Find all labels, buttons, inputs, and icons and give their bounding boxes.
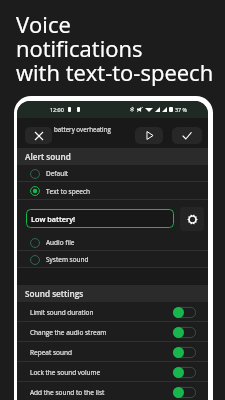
button[interactable]: Play [135,127,163,144]
staticText: Sound settings [25,288,84,299]
staticText: Voice notifications with text-to-speech [16,9,214,88]
staticText: 37 % [175,106,188,113]
staticText: Repeat sound [30,348,173,357]
staticText: Change the audio stream [30,328,173,337]
button[interactable]: Repeat sound [17,342,208,362]
button[interactable]: Audio file [17,234,208,251]
button[interactable]: Save [172,127,202,144]
staticText: Lock the sound volume [30,368,173,377]
button[interactable]: Add the sound to the list [17,382,208,400]
staticText: 12:00 [50,106,64,113]
staticText: Audio file [46,238,75,247]
button[interactable]: Lock the sound volume [17,362,208,382]
button[interactable]: Speech settings [180,207,204,231]
button[interactable]: System sound [17,251,208,268]
button[interactable]: Change the audio stream [17,322,208,342]
staticText: Add the sound to the list [30,388,173,397]
staticText: Low battery! [31,214,76,224]
button[interactable]: Default [17,165,208,182]
button[interactable]: Text to speech [17,182,208,200]
staticText: System sound [46,255,89,264]
button[interactable]: Limit sound duration [17,302,208,322]
staticText: battery overheating [54,125,111,133]
staticText: Text to speech [46,187,91,196]
button[interactable]: Close [25,127,52,144]
staticText: Alert sound [25,151,71,162]
staticText: Limit sound duration [30,308,173,317]
staticText: Default [46,169,69,178]
button[interactable]: Low battery! [26,209,174,228]
